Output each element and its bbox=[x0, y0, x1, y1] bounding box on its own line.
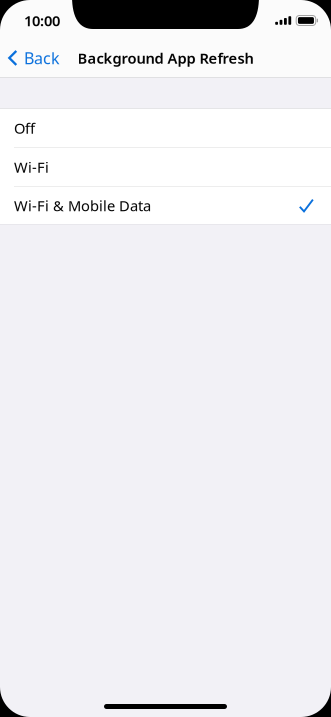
staticText: Back bbox=[24, 47, 60, 69]
staticText: Wi-Fi bbox=[14, 157, 49, 177]
button[interactable]: Off bbox=[0, 109, 331, 147]
button[interactable]: Back bbox=[0, 41, 68, 75]
staticText: Wi-Fi & Mobile Data bbox=[14, 196, 151, 215]
staticText: Off bbox=[14, 118, 35, 138]
button[interactable]: Wi-Fi & Mobile Data bbox=[0, 187, 331, 224]
staticText: Background App Refresh bbox=[77, 48, 253, 68]
staticText: 10:00 bbox=[24, 11, 60, 30]
button[interactable]: Wi-Fi bbox=[0, 148, 331, 186]
